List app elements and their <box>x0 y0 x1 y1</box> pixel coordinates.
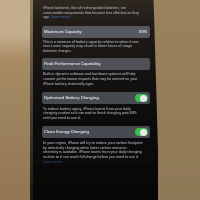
staticText: age. <box>43 14 50 19</box>
staticText: charging routine so it can wait to finis… <box>43 110 137 115</box>
other: Toggle Clean Energy Charging <box>135 128 148 136</box>
staticText: routine as it can reach full charge befo… <box>43 154 139 159</box>
staticText: This is a measure of battery capacity re… <box>43 39 139 44</box>
staticText: To reduce battery aging, iPhone learns f… <box>43 106 131 111</box>
staticText: Built-in dynamic software and hardware s… <box>43 71 136 76</box>
staticText: Learn more... <box>43 159 65 164</box>
staticText: iPhone batteries, like all rechargeable … <box>43 5 126 10</box>
button[interactable]: Clean Energy Charging <box>42 126 150 138</box>
staticText: between charges. <box>43 48 72 53</box>
button[interactable]: Peak Performance Capability <box>42 58 150 70</box>
staticText: 89% <box>139 29 148 35</box>
button[interactable]: Maximum Capacity <box>42 26 150 38</box>
staticText: new. Lower capacity may result in fewer … <box>43 43 133 48</box>
staticText: electricity is available. iPhone learns … <box>43 149 142 154</box>
staticText: counter performance impacts that may be … <box>43 76 138 81</box>
staticText: Maximum Capacity <box>44 29 82 35</box>
staticText: by selectively charging when lower carbo… <box>43 145 127 150</box>
button[interactable]: Optimized Battery Charging <box>42 92 150 104</box>
staticText: Clean Energy Charging <box>44 129 89 135</box>
staticText: Optimized Battery Charging <box>44 95 99 101</box>
staticText: iPhone battery chemically ages. <box>43 81 95 86</box>
staticText: consumable components that become less e… <box>43 10 140 15</box>
staticText: Peak Performance Capability <box>44 61 101 67</box>
staticText: until you need to use it. <box>43 115 81 120</box>
staticText: Learn more... <box>51 14 73 19</box>
other: Toggle Optimized Battery Charging <box>135 94 148 102</box>
staticText: In your region, iPhone will try to reduc… <box>43 140 143 145</box>
